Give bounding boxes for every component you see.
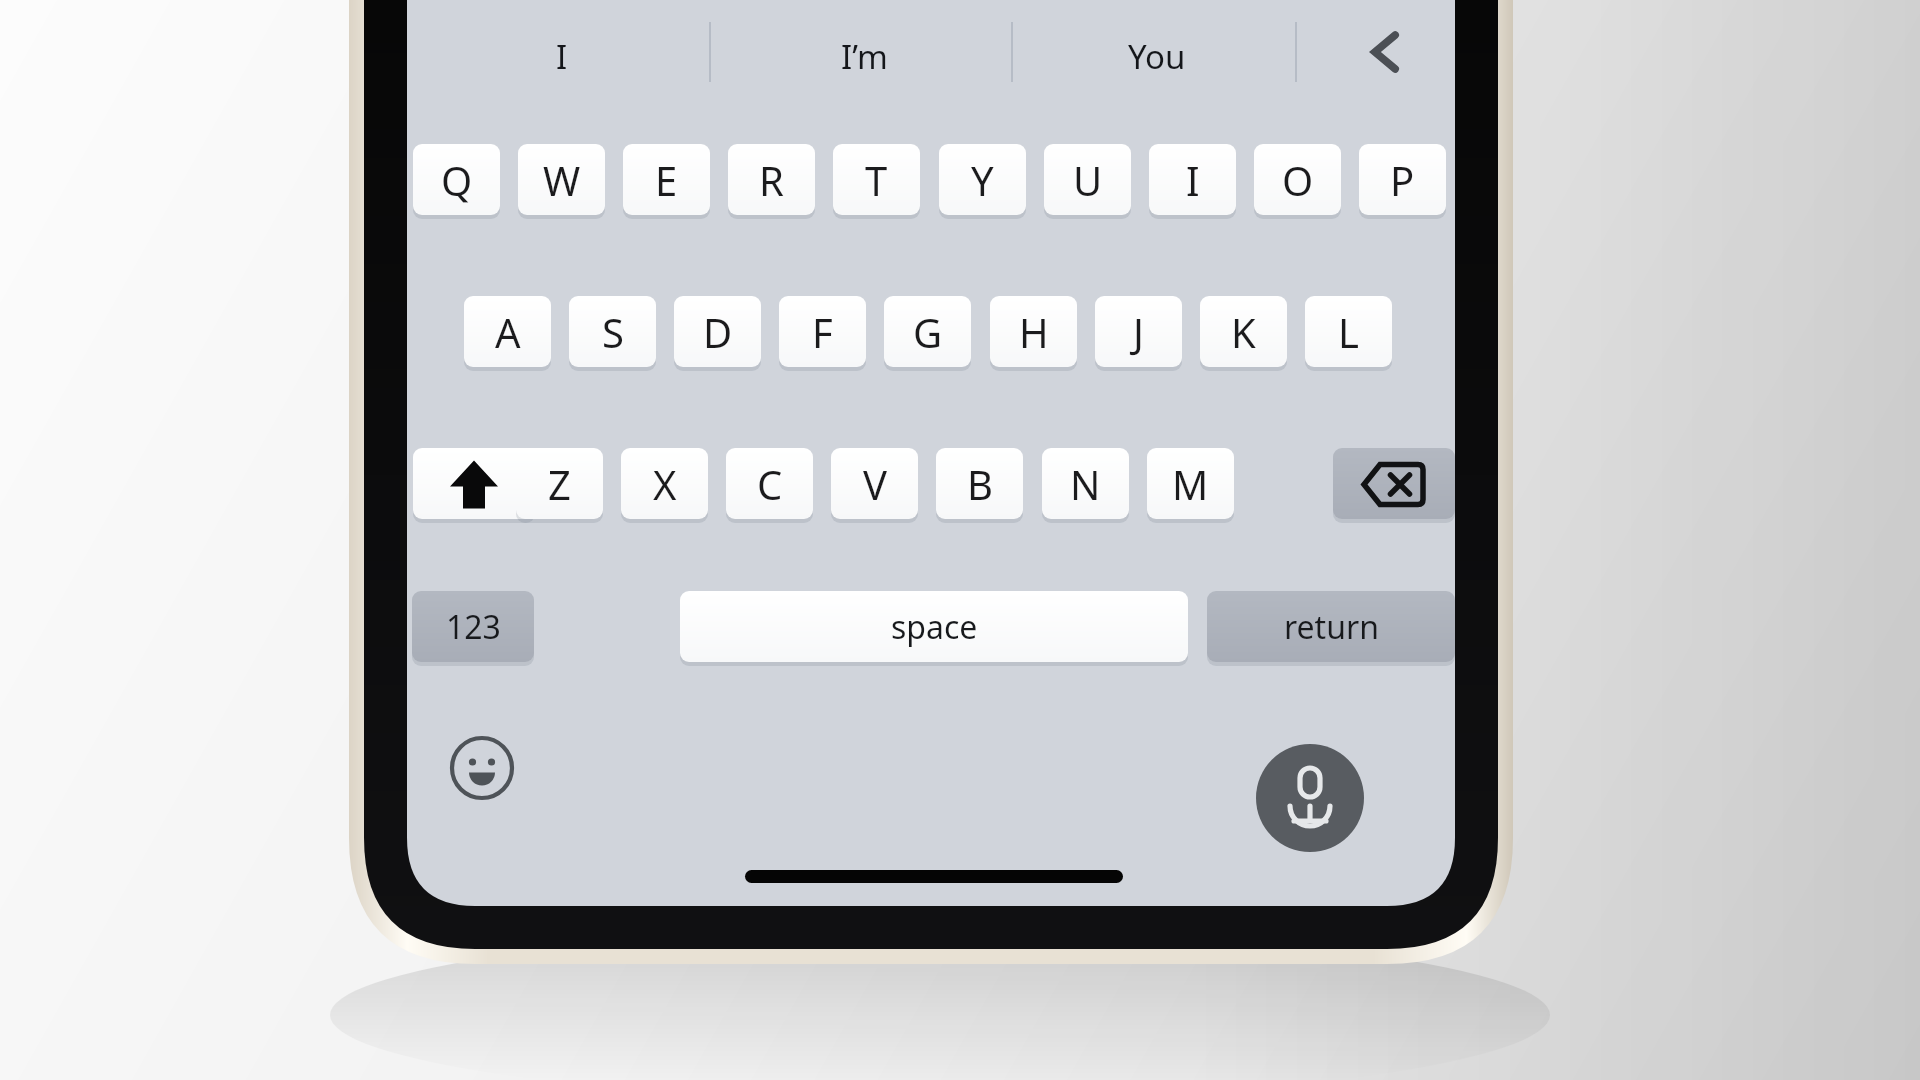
staticText: F [812, 305, 833, 359]
button[interactable]: D [674, 296, 761, 370]
staticText: P [1390, 153, 1415, 207]
button[interactable]: S [569, 296, 656, 370]
button[interactable]: B [936, 448, 1023, 522]
staticText: K [1231, 305, 1256, 359]
staticText: space [891, 605, 978, 649]
button[interactable]: A [464, 296, 551, 370]
button[interactable]: return [1207, 591, 1455, 665]
staticText: I [1186, 153, 1200, 207]
staticText: H [1019, 305, 1049, 359]
button[interactable]: Shift [413, 448, 535, 522]
button[interactable]: U [1044, 144, 1131, 218]
button[interactable]: G [884, 296, 971, 370]
staticText: L [1338, 305, 1359, 359]
button[interactable]: 123 [412, 591, 534, 665]
button[interactable]: J [1095, 296, 1182, 370]
staticText: J [1133, 305, 1144, 359]
button[interactable]: E [623, 144, 710, 218]
button[interactable]: N [1042, 448, 1129, 522]
staticText: Q [441, 153, 473, 207]
button[interactable]: I [413, 0, 711, 104]
staticText: U [1073, 153, 1103, 207]
staticText: O [1282, 153, 1314, 207]
button[interactable]: space [680, 591, 1188, 665]
button[interactable]: Emoji [449, 735, 515, 801]
button[interactable]: P [1359, 144, 1446, 218]
button[interactable]: C [726, 448, 813, 522]
button[interactable]: W [518, 144, 605, 218]
button[interactable]: Z [516, 448, 603, 522]
button[interactable]: X [621, 448, 708, 522]
staticText: B [967, 457, 993, 511]
staticText: W [543, 153, 581, 207]
button[interactable]: Hide predictions [1301, 0, 1455, 104]
staticText: E [655, 153, 678, 207]
button[interactable]: You [1017, 0, 1297, 104]
button[interactable]: Q [413, 144, 500, 218]
staticText: 123 [446, 605, 501, 649]
staticText: D [703, 305, 733, 359]
staticText: X [653, 457, 677, 511]
staticText: R [759, 153, 784, 207]
button[interactable]: Dictation [1256, 744, 1364, 852]
button[interactable]: M [1147, 448, 1234, 522]
staticText: I [556, 34, 568, 79]
staticText: I’m [841, 34, 888, 79]
button[interactable]: K [1200, 296, 1287, 370]
staticText: M [1172, 457, 1209, 511]
button[interactable]: I [1149, 144, 1236, 218]
staticText: A [495, 305, 521, 359]
button[interactable]: T [833, 144, 920, 218]
staticText: T [865, 153, 888, 207]
button[interactable]: V [831, 448, 918, 522]
staticText: Z [548, 457, 571, 511]
button[interactable]: O [1254, 144, 1341, 218]
button[interactable]: Y [939, 144, 1026, 218]
staticText: return [1284, 605, 1379, 649]
button[interactable]: H [990, 296, 1077, 370]
staticText: V [863, 457, 887, 511]
staticText: G [913, 305, 943, 359]
staticText: S [602, 305, 624, 359]
button[interactable]: Backspace [1333, 448, 1455, 522]
button[interactable]: I’m [715, 0, 1013, 104]
button[interactable]: F [779, 296, 866, 370]
button[interactable]: L [1305, 296, 1392, 370]
button[interactable]: R [728, 144, 815, 218]
staticText: N [1070, 457, 1101, 511]
staticText: Y [971, 153, 994, 207]
staticText: C [757, 457, 783, 511]
staticText: You [1128, 34, 1186, 79]
